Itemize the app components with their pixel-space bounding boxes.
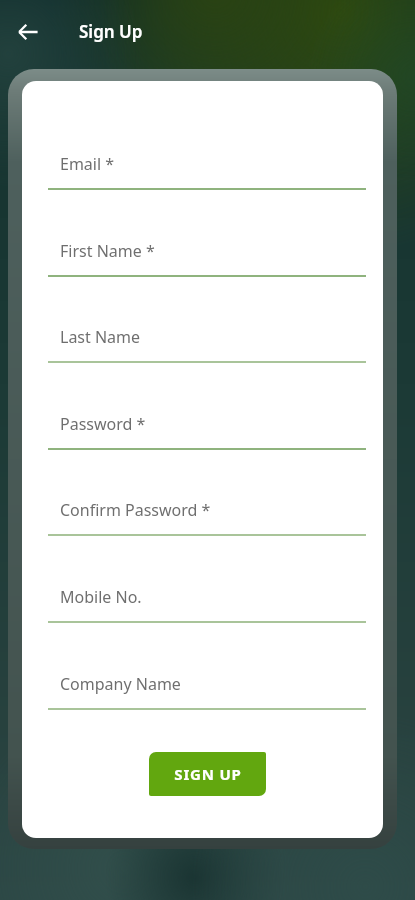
staticText: Sign Up xyxy=(79,20,143,43)
button[interactable]: Last Name xyxy=(48,321,366,365)
staticText: Last Name xyxy=(60,326,141,348)
button[interactable]: Company Name xyxy=(48,668,366,712)
button[interactable]: Confirm Password * xyxy=(48,494,366,538)
staticText: Confirm Password * xyxy=(60,499,211,521)
button[interactable]: Email * xyxy=(48,148,366,192)
button[interactable]: Password * xyxy=(48,408,366,452)
staticText: Company Name xyxy=(60,673,181,695)
button[interactable]: Back xyxy=(10,14,46,50)
button[interactable]: SIGN UP xyxy=(149,752,266,796)
staticText: SIGN UP xyxy=(174,764,242,784)
staticText: Mobile No. xyxy=(60,586,142,608)
staticText: Password * xyxy=(60,413,146,435)
button[interactable]: Mobile No. xyxy=(48,581,366,625)
staticText: Email * xyxy=(60,153,115,175)
button[interactable]: First Name * xyxy=(48,235,366,279)
staticText: First Name * xyxy=(60,240,155,262)
